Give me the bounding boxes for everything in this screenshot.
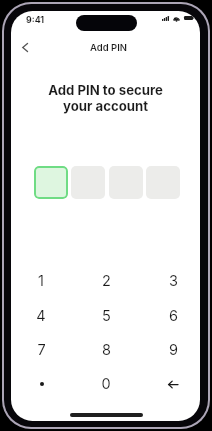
button[interactable]: Delete <box>147 368 199 400</box>
staticText: 2 <box>102 272 111 290</box>
button[interactable] <box>15 368 67 400</box>
button[interactable]: 9 <box>147 334 199 366</box>
staticText: 1 <box>38 272 44 290</box>
staticText: 6 <box>169 307 178 325</box>
button[interactable]: 8 <box>80 334 132 366</box>
staticText: 0 <box>101 375 111 393</box>
button[interactable] <box>34 166 68 199</box>
button[interactable]: 5 <box>80 300 132 332</box>
button[interactable]: 2 <box>80 265 132 297</box>
staticText: 9:41 <box>26 14 45 25</box>
staticText: Add PIN to secure your account <box>11 82 200 421</box>
staticText: 3 <box>169 272 178 290</box>
staticText: 7 <box>37 341 46 359</box>
button[interactable]: 1 <box>15 265 67 297</box>
staticText: 4 <box>36 307 46 325</box>
staticText: Add PIN <box>90 42 127 53</box>
button[interactable]: 6 <box>147 300 199 332</box>
button[interactable]: 7 <box>15 334 67 366</box>
button[interactable]: 4 <box>15 300 67 332</box>
staticText: 9 <box>169 341 178 359</box>
staticText: 8 <box>102 341 111 359</box>
button[interactable]: Back <box>13 35 37 59</box>
staticText: 5 <box>102 307 111 325</box>
button[interactable]: 0 <box>80 368 132 400</box>
button[interactable]: 3 <box>147 265 199 297</box>
